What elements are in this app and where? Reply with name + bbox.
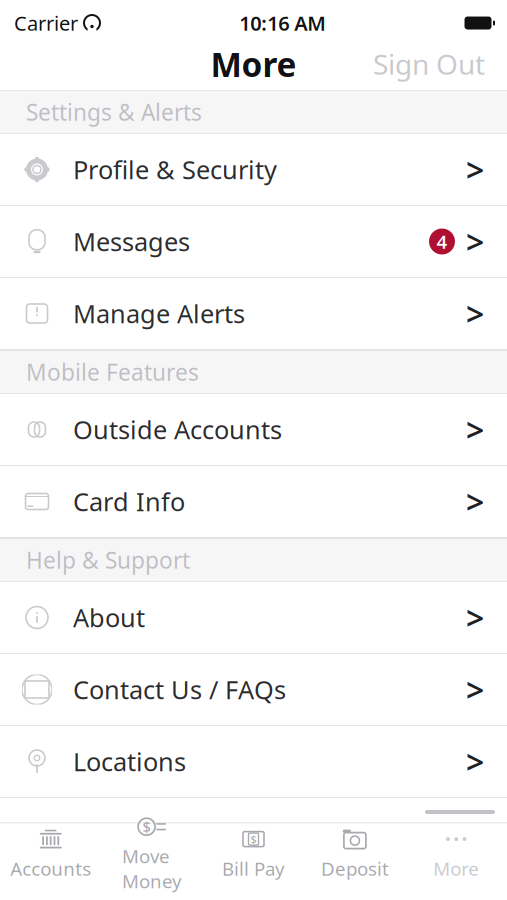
staticText: Profile & Security — [73, 153, 277, 186]
button[interactable]: $ — [203, 823, 304, 883]
staticText: > — [466, 740, 484, 783]
staticText: Manage Alerts — [73, 297, 245, 330]
staticText: About — [73, 601, 145, 634]
staticText: Settings & Alerts — [26, 97, 202, 127]
staticText: Locations — [73, 745, 186, 778]
staticText: > — [466, 148, 484, 191]
staticText: Accounts — [10, 856, 91, 881]
staticText: $ — [143, 817, 151, 836]
button[interactable]: Deposit — [304, 823, 406, 883]
button[interactable]: $ — [101, 823, 203, 883]
button[interactable]: Outside Accounts — [0, 394, 507, 466]
staticText: > — [466, 596, 484, 639]
button[interactable]: Card Info — [0, 466, 507, 538]
staticText: > — [466, 292, 484, 335]
button[interactable]: Sign Out — [373, 37, 507, 91]
staticText: $ — [250, 832, 256, 846]
staticText: Contact Us / FAQs — [73, 673, 286, 706]
staticText: Messages — [73, 225, 190, 258]
staticText: 4 — [436, 229, 447, 254]
staticText: > — [466, 668, 484, 711]
staticText: Sign Out — [373, 45, 485, 83]
button[interactable]: Messages — [0, 206, 507, 278]
staticText: 10:16 AM — [239, 10, 326, 36]
staticText: Deposit — [321, 856, 389, 881]
staticText: Move Money — [122, 844, 182, 893]
staticText: > — [466, 480, 484, 523]
staticText: > — [466, 220, 484, 263]
staticText: Card Info — [73, 485, 185, 518]
staticText: More — [210, 42, 296, 86]
button[interactable]: Manage Alerts — [0, 278, 507, 350]
button[interactable]: Contact Us / FAQs — [0, 654, 507, 726]
staticText: Help & Support — [26, 545, 190, 575]
button[interactable]: Locations — [0, 726, 507, 798]
staticText: Carrier — [14, 10, 78, 36]
staticText: Bill Pay — [222, 856, 285, 881]
button[interactable]: Profile & Security — [0, 134, 507, 206]
staticText: Outside Accounts — [73, 413, 282, 446]
button[interactable]: Accounts — [0, 823, 101, 883]
staticText: More — [433, 856, 479, 881]
staticText: > — [466, 408, 484, 451]
button[interactable]: About — [0, 582, 507, 654]
staticText: Mobile Features — [26, 357, 199, 387]
button[interactable]: More — [406, 823, 507, 883]
